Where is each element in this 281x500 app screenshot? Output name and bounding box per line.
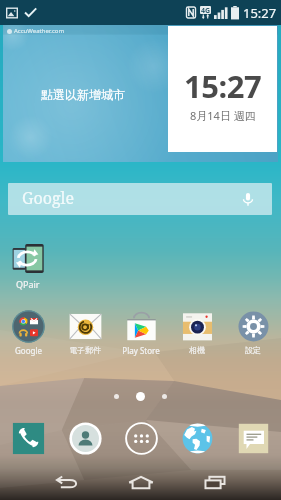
staticText: Google (15, 345, 42, 356)
button[interactable]: Google (8, 183, 272, 215)
staticText: Play Store (122, 345, 160, 356)
button[interactable]: Browser (169, 417, 225, 459)
button[interactable]: Google (0, 310, 57, 356)
staticText: 相機 (189, 345, 205, 355)
staticText: 15:27 (184, 65, 262, 107)
button[interactable]: Home (104, 468, 178, 496)
staticText: 8月14日 週四 (190, 108, 256, 123)
button[interactable]: QPair (0, 242, 56, 290)
staticText: Google (22, 187, 75, 209)
staticText: 設定 (245, 345, 261, 355)
button[interactable]: Play Store (113, 310, 169, 356)
staticText: 點選以新增城市 (41, 87, 125, 102)
button[interactable]: Contacts (57, 417, 113, 459)
button[interactable]: Messages (225, 417, 281, 459)
staticText: 4G (201, 6, 211, 14)
staticText: 15:27 (243, 4, 277, 22)
button[interactable]: Phone (0, 417, 57, 459)
button[interactable]: Back (30, 468, 104, 496)
button[interactable]: Apps (113, 417, 169, 459)
staticText: 電子郵件 (69, 345, 101, 355)
staticText: QPair (16, 278, 40, 290)
button[interactable]: Recent apps (178, 468, 252, 496)
staticText: AccuWeather.com (14, 27, 65, 35)
button[interactable]: 電子郵件 (57, 310, 113, 355)
button[interactable]: 設定 (225, 310, 281, 355)
button[interactable]: 相機 (169, 310, 225, 355)
